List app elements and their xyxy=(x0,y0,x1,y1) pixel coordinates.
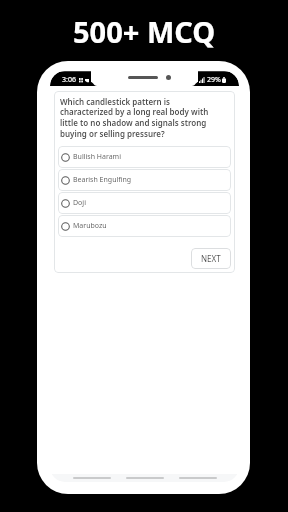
staticText: NEXT xyxy=(201,253,221,264)
staticText: 3:06 xyxy=(62,75,76,85)
staticText: 500+ MCQ xyxy=(73,12,216,51)
button[interactable]: Bullish Harami xyxy=(58,146,231,168)
button[interactable]: NEXT xyxy=(191,248,231,269)
staticText: Doji xyxy=(73,198,86,208)
button[interactable]: Marubozu xyxy=(58,215,231,237)
staticText: Marubozu xyxy=(73,221,107,231)
staticText: 29% xyxy=(207,75,221,85)
staticText: Bearish Engulfing xyxy=(73,175,132,185)
button[interactable]: Bearish Engulfing xyxy=(58,169,231,191)
staticText: Bullish Harami xyxy=(73,152,121,162)
staticText: Which candlestick pattern is characteriz… xyxy=(60,96,216,140)
button[interactable]: Doji xyxy=(58,192,231,214)
